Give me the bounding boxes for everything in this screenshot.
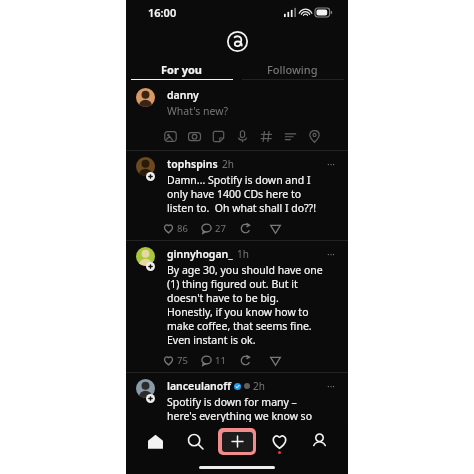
button[interactable]: Share <box>269 354 282 367</box>
staticText: 2h <box>222 157 234 171</box>
button[interactable]: Search <box>178 424 212 458</box>
button[interactable]: Like <box>163 354 188 367</box>
staticText: Damn... Spotify is down and I only have … <box>167 173 323 215</box>
button[interactable]: Reply <box>201 222 226 235</box>
button[interactable]: Repost <box>239 222 252 235</box>
staticText: lanceulanoff <box>167 379 231 393</box>
button[interactable]: Reply <box>201 354 226 367</box>
button[interactable]: Repost <box>239 354 252 367</box>
button[interactable]: Camera <box>186 128 202 144</box>
staticText: 86 <box>177 222 188 235</box>
staticText: 2h <box>253 379 265 393</box>
staticText: 1h <box>237 247 249 261</box>
staticText: ginnyhogan_ <box>167 247 233 261</box>
button[interactable]: Location <box>306 128 322 144</box>
button[interactable]: Hashtag <box>258 128 274 144</box>
button[interactable]: Add image <box>162 128 178 144</box>
staticText: 16:00 <box>148 5 177 20</box>
staticText: What's new? <box>167 104 229 118</box>
staticText: tophspins <box>167 157 218 171</box>
staticText: 75 <box>177 354 188 367</box>
button[interactable]: Like <box>163 222 188 235</box>
button[interactable]: ··· <box>323 379 336 393</box>
staticText: Following <box>267 62 318 77</box>
button[interactable]: ··· <box>323 247 336 261</box>
button[interactable]: Sticker <box>210 128 226 144</box>
button[interactable]: Share <box>269 222 282 235</box>
button[interactable]: ··· <box>323 157 336 171</box>
button[interactable]: Activity <box>262 424 296 458</box>
staticText: 11 <box>215 354 226 367</box>
button[interactable]: Profile <box>302 424 336 458</box>
button[interactable]: Voice <box>234 128 250 144</box>
staticText: 27 <box>215 222 226 235</box>
staticText: danny <box>167 88 199 102</box>
button[interactable] <box>163 445 336 474</box>
staticText: For you <box>161 62 202 77</box>
button[interactable]: Create <box>218 428 256 455</box>
button[interactable]: Poll <box>282 128 298 144</box>
button[interactable]: For you <box>126 58 237 80</box>
staticText: Spotify is down for many – here's everyt… <box>167 395 323 437</box>
button[interactable]: Home <box>138 424 172 458</box>
button[interactable]: Following <box>237 58 348 80</box>
staticText: By age 30, you should have one (1) thing… <box>167 263 323 347</box>
